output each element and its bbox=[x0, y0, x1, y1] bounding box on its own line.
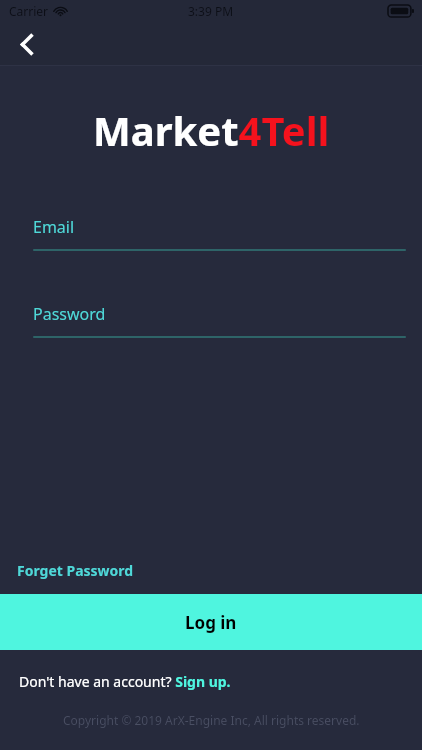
staticText: Log in bbox=[185, 611, 237, 634]
button[interactable]: Back bbox=[6, 24, 46, 64]
staticText: Market4Tell bbox=[93, 103, 330, 157]
button[interactable]: Log in bbox=[0, 594, 422, 650]
button[interactable]: Forget Password bbox=[0, 553, 422, 594]
staticText: Don't have an account? Sign up. bbox=[19, 672, 231, 691]
button[interactable]: Email bbox=[0, 216, 422, 251]
staticText: Forget Password bbox=[17, 561, 134, 580]
staticText: Copyright © 2019 ArX-Engine Inc, All rig… bbox=[63, 712, 360, 728]
button[interactable]: Don't have an account? Sign up. bbox=[0, 672, 422, 691]
staticText: 3:39 PM bbox=[188, 3, 234, 19]
button[interactable]: Password bbox=[0, 303, 422, 338]
staticText: Carrier bbox=[9, 3, 49, 19]
staticText: Email bbox=[33, 216, 75, 238]
staticText: Password bbox=[33, 303, 106, 325]
